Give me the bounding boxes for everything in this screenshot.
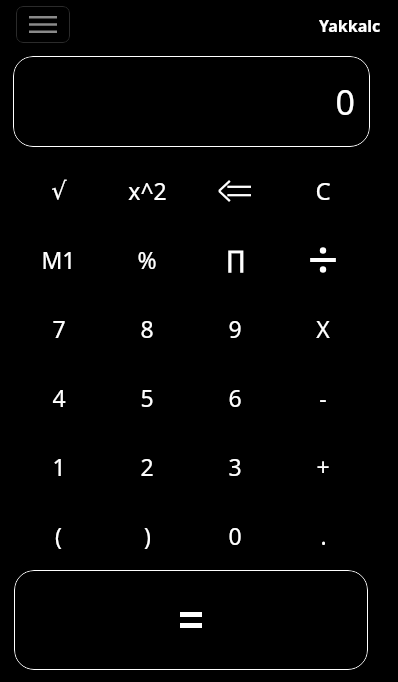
button[interactable]: 2 — [103, 432, 191, 501]
button[interactable]: 0 — [191, 501, 279, 570]
button[interactable]: Menu — [16, 6, 70, 43]
button[interactable]: 8 — [103, 294, 191, 363]
staticText: 7 — [52, 313, 66, 344]
staticText: M1 — [41, 244, 76, 275]
staticText: X — [316, 313, 330, 344]
button[interactable]: 5 — [103, 363, 191, 432]
button[interactable]: 4 — [14, 363, 103, 432]
button[interactable]: √ — [14, 156, 103, 225]
button[interactable]: ) — [103, 501, 191, 570]
staticText: 1 — [52, 451, 66, 482]
button[interactable]: X — [279, 294, 367, 363]
staticText: √ — [51, 177, 67, 205]
staticText: + — [316, 451, 330, 482]
button[interactable]: Divide — [279, 225, 367, 294]
staticText: 3 — [228, 451, 242, 482]
staticText: 0 — [335, 79, 355, 125]
staticText: ( — [55, 520, 62, 551]
staticText: - — [319, 382, 327, 413]
button[interactable]: Display — [13, 56, 370, 147]
button[interactable]: Equals — [14, 570, 368, 670]
staticText: ) — [144, 520, 151, 551]
staticText: 4 — [52, 382, 66, 413]
button[interactable]: ( — [14, 501, 103, 570]
staticText: 0 — [228, 520, 242, 551]
staticText: ∏ — [226, 246, 245, 274]
staticText: 8 — [140, 313, 154, 344]
button[interactable]: 3 — [191, 432, 279, 501]
button[interactable]: 6 — [191, 363, 279, 432]
button[interactable]: M1 — [14, 225, 103, 294]
button[interactable]: 9 — [191, 294, 279, 363]
button[interactable]: . — [279, 501, 367, 570]
button[interactable]: Backspace — [191, 156, 279, 225]
button[interactable]: % — [103, 225, 191, 294]
button[interactable]: 7 — [14, 294, 103, 363]
button[interactable]: ∏ — [191, 225, 279, 294]
button[interactable]: x^2 — [103, 156, 191, 225]
button[interactable]: 1 — [14, 432, 103, 501]
staticText: C — [315, 174, 331, 207]
staticText: . — [320, 520, 327, 551]
staticText: x^2 — [128, 175, 167, 206]
staticText: 6 — [228, 382, 242, 413]
button[interactable]: - — [279, 363, 367, 432]
staticText: Yakkalc — [319, 15, 381, 37]
staticText: % — [137, 244, 157, 275]
staticText: 9 — [228, 313, 242, 344]
button[interactable]: C — [279, 156, 367, 225]
button[interactable]: + — [279, 432, 367, 501]
staticText: 5 — [140, 382, 154, 413]
staticText: 2 — [140, 451, 154, 482]
